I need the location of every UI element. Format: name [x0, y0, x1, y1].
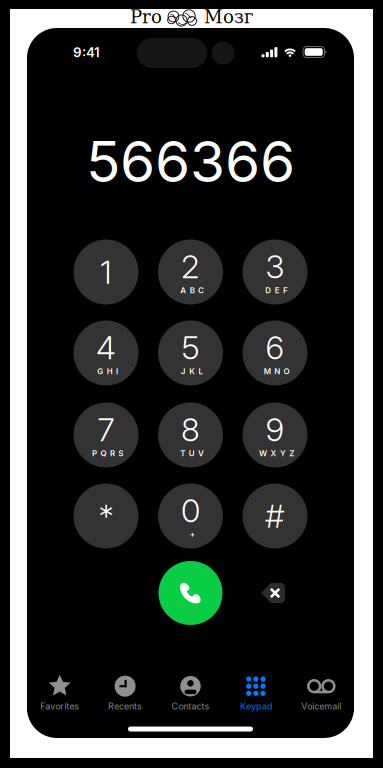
- staticText: 566366: [86, 127, 295, 196]
- staticText: N: [274, 366, 280, 376]
- staticText: C: [198, 285, 204, 295]
- staticText: Keypad: [240, 701, 272, 712]
- staticText: 6: [265, 328, 284, 367]
- staticText: B: [190, 285, 195, 295]
- staticText: Recents: [108, 701, 142, 712]
- staticText: X: [270, 448, 276, 458]
- staticText: M: [264, 366, 271, 376]
- button[interactable]: Keypad: [223, 668, 289, 712]
- staticText: U: [189, 448, 195, 458]
- button[interactable]: 5: [158, 320, 223, 385]
- staticText: G: [97, 366, 103, 376]
- staticText: R: [110, 448, 115, 458]
- staticText: 5: [181, 328, 199, 367]
- button[interactable]: 0: [158, 483, 223, 548]
- staticText: 7: [97, 410, 114, 449]
- button[interactable]: Delete: [251, 576, 295, 610]
- staticText: T: [180, 448, 185, 458]
- button[interactable]: 3: [242, 239, 307, 304]
- button[interactable]: Call: [158, 561, 222, 625]
- staticText: Y: [280, 448, 286, 458]
- button[interactable]: #: [242, 483, 307, 548]
- staticText: J: [181, 366, 186, 376]
- staticText: Contacts: [171, 701, 209, 712]
- staticText: I: [116, 366, 118, 376]
- button[interactable]: Contacts: [158, 668, 223, 712]
- staticText: #: [265, 497, 285, 535]
- staticText: 9: [265, 410, 284, 449]
- staticText: W: [259, 448, 267, 458]
- staticText: 2: [181, 247, 200, 286]
- staticText: 1: [100, 253, 112, 291]
- staticText: S: [118, 448, 123, 458]
- button[interactable]: 2: [158, 239, 223, 304]
- staticText: 0: [181, 491, 200, 530]
- staticText: D: [265, 285, 271, 295]
- staticText: V: [198, 448, 204, 458]
- staticText: O: [284, 366, 290, 376]
- button[interactable]: Favorites: [27, 668, 92, 712]
- button[interactable]: 1: [73, 239, 138, 304]
- staticText: Z: [289, 448, 294, 458]
- button[interactable]: Recents: [92, 668, 158, 712]
- button[interactable]: 8: [158, 402, 223, 467]
- staticText: Q: [100, 448, 106, 458]
- staticText: L: [199, 366, 204, 376]
- staticText: Pro: [130, 6, 162, 27]
- staticText: H: [107, 366, 113, 376]
- staticText: A: [180, 285, 186, 295]
- staticText: 9:41: [73, 44, 100, 60]
- staticText: *: [98, 497, 113, 535]
- button[interactable]: 6: [242, 320, 307, 385]
- staticText: Favorites: [40, 701, 79, 712]
- button[interactable]: 9: [242, 402, 307, 467]
- staticText: Мозг: [204, 6, 254, 27]
- button[interactable]: 4: [73, 320, 138, 385]
- staticText: 4: [96, 328, 116, 367]
- button[interactable]: *: [73, 483, 138, 548]
- staticText: 8: [181, 410, 200, 449]
- staticText: 3: [265, 247, 284, 286]
- staticText: F: [283, 285, 288, 295]
- staticText: E: [275, 285, 280, 295]
- staticText: Voicemail: [301, 701, 341, 712]
- staticText: +: [190, 529, 195, 539]
- staticText: K: [189, 366, 195, 376]
- staticText: P: [92, 448, 97, 458]
- button[interactable]: Voicemail: [289, 668, 354, 712]
- button[interactable]: 7: [73, 402, 138, 467]
